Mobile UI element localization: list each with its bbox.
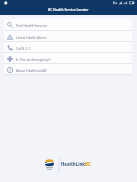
staticText: BC Health Service Locator [48, 7, 89, 11]
staticText: About HealthLinkBC [16, 68, 48, 72]
button[interactable]: Is This an Emergency? [4, 53, 132, 64]
staticText: HealthLinkBC [61, 161, 91, 167]
button[interactable]: Find Health Services [4, 19, 132, 31]
staticText: Find Health Services [16, 23, 48, 27]
button[interactable]: About HealthLinkBC [4, 64, 132, 75]
button[interactable]: Call 8-1-1 [4, 42, 132, 53]
button[interactable]: Latest Health Alerts [4, 31, 132, 42]
staticText: Call 8-1-1 [16, 46, 31, 50]
staticText: Is This an Emergency? [16, 57, 51, 61]
staticText: Latest Health Alerts [16, 35, 47, 39]
